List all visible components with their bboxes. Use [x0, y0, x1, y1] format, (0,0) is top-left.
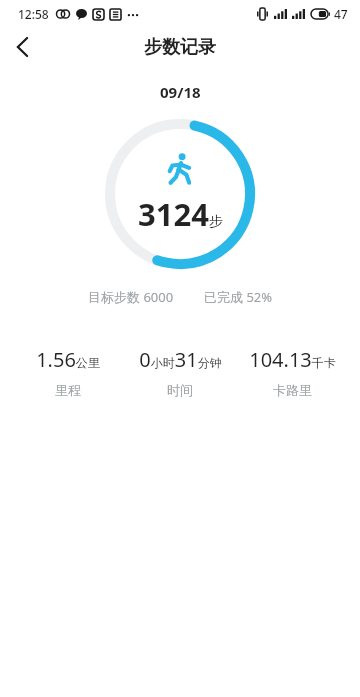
button[interactable]: 0小时31分钟 — [124, 346, 236, 398]
staticText: 12:58 — [18, 6, 49, 22]
staticText: 47 — [334, 6, 348, 22]
staticText: 已完成 52% — [204, 288, 273, 306]
staticText: 步数记录 — [144, 36, 216, 59]
button[interactable]: Back — [0, 28, 44, 66]
staticText: 0小时31分钟 — [139, 346, 222, 373]
staticText: 09/18 — [160, 82, 201, 102]
staticText: 里程 — [55, 382, 81, 398]
button[interactable]: 104.13千卡 — [236, 346, 348, 398]
staticText: 目标步数 6000 — [88, 288, 174, 306]
button[interactable]: 1.56公里 — [12, 346, 124, 398]
staticText: 卡路里 — [273, 382, 312, 398]
staticText: 1.56公里 — [36, 346, 100, 373]
staticText: 3124步 — [138, 193, 223, 235]
staticText: 104.13千卡 — [249, 346, 336, 373]
staticText: 时间 — [167, 382, 193, 398]
